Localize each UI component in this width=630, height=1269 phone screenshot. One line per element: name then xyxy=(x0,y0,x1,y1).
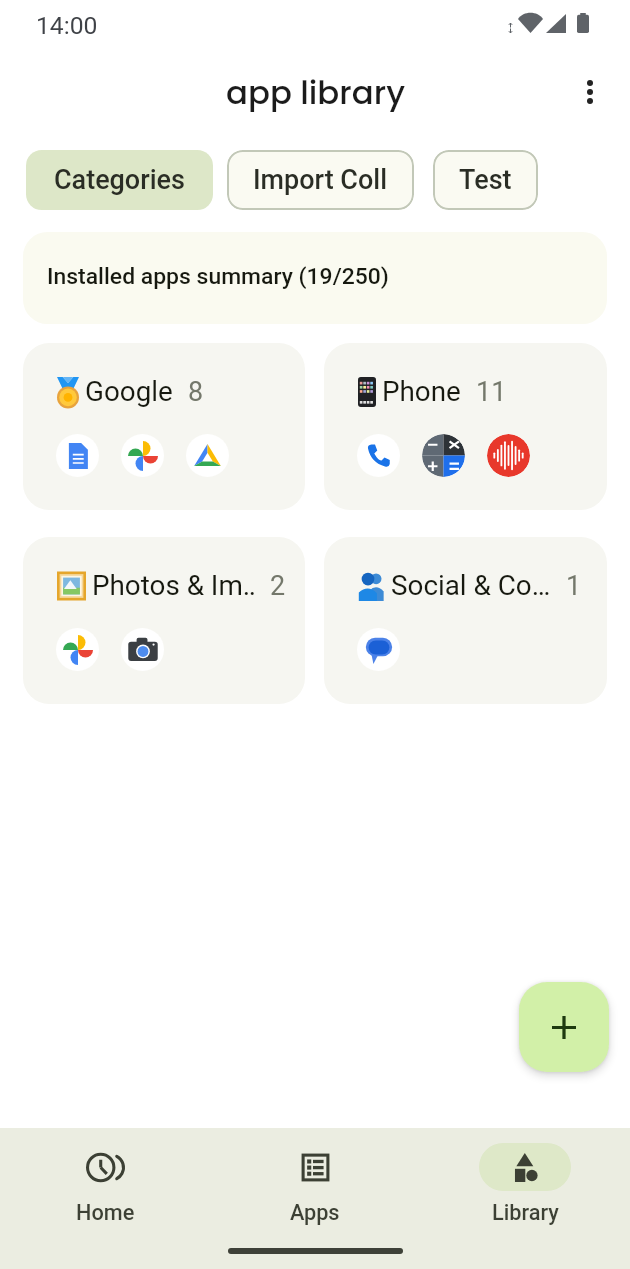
staticText: 8 xyxy=(188,376,204,408)
button[interactable]: Categories xyxy=(26,150,213,210)
staticText: Installed apps summary (19/250) xyxy=(47,263,389,290)
staticText: 11 xyxy=(476,376,507,408)
button[interactable]: Photos & Im… xyxy=(23,537,305,704)
button[interactable]: Phone xyxy=(324,343,607,510)
button[interactable]: Social & Co… xyxy=(324,537,607,704)
button[interactable]: Import Coll xyxy=(227,150,414,210)
staticText: Google xyxy=(85,375,173,408)
button[interactable]: Add xyxy=(519,982,609,1072)
staticText: Test xyxy=(459,164,512,196)
button[interactable]: Home xyxy=(0,1143,210,1225)
staticText: Import Coll xyxy=(253,164,388,196)
staticText: 14:00 xyxy=(36,11,98,40)
button[interactable]: More options xyxy=(551,62,628,122)
staticText: Social & Co… xyxy=(391,569,551,602)
button[interactable]: Library xyxy=(420,1143,630,1225)
staticText: Photos & Im… xyxy=(92,569,255,602)
button[interactable]: Installed apps summary (19/250) xyxy=(23,232,607,324)
staticText: Phone xyxy=(382,375,461,408)
staticText: app library xyxy=(226,70,405,115)
button[interactable]: Test xyxy=(433,150,538,210)
staticText: 2 xyxy=(270,570,286,602)
staticText: Categories xyxy=(54,164,185,196)
staticText: Home xyxy=(76,1200,135,1225)
staticText: Apps xyxy=(290,1200,340,1225)
button[interactable]: Google xyxy=(23,343,305,510)
staticText: 1 xyxy=(566,570,582,602)
button[interactable]: Apps xyxy=(210,1143,420,1225)
staticText: Library xyxy=(492,1200,559,1225)
